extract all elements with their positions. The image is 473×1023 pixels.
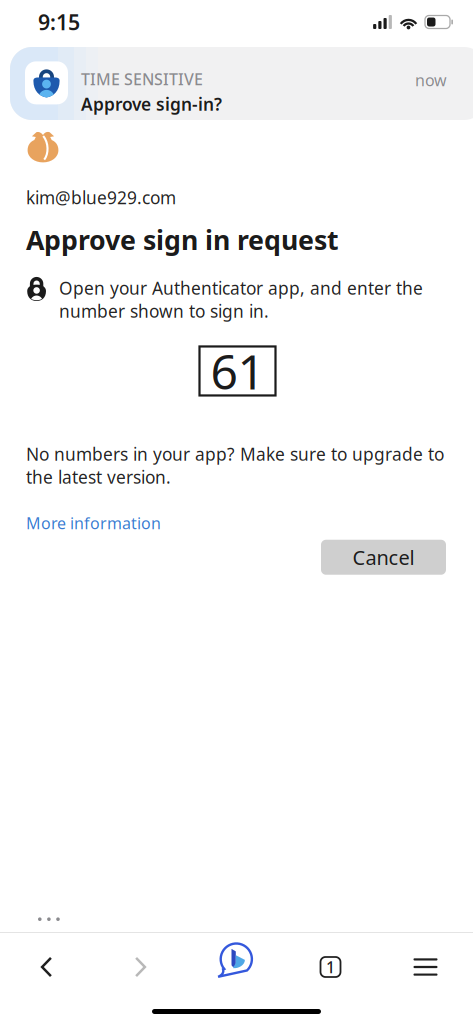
staticText: now [415, 69, 447, 91]
button[interactable]: More information [26, 512, 161, 534]
staticText: TIME SENSITIVE [81, 68, 203, 90]
button[interactable]: Cancel [321, 540, 446, 575]
button[interactable]: Menu [378, 943, 473, 991]
button[interactable]: Forward [93, 943, 188, 991]
staticText: Cancel [352, 544, 414, 571]
button[interactable]: Back [0, 943, 93, 991]
staticText: Open your Authenticator app, and enter t… [59, 276, 423, 322]
staticText: 61 [210, 339, 264, 403]
staticText: 1 [326, 956, 335, 978]
staticText: Approve sign-in? [81, 93, 222, 116]
staticText: kim@blue929.com [26, 186, 176, 209]
button[interactable]: Bing Chat [188, 943, 283, 991]
staticText: More information [26, 512, 161, 534]
button[interactable]: Tabs [283, 943, 378, 991]
button[interactable]: TIME SENSITIVE [10, 47, 473, 120]
staticText: Approve sign in request [26, 222, 339, 257]
staticText: 9:15 [38, 8, 80, 36]
staticText: No numbers in your app? Make sure to upg… [26, 442, 444, 488]
